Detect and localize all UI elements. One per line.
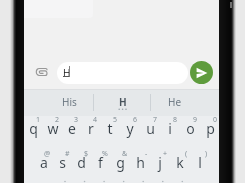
staticText: a <box>40 153 48 172</box>
staticText: 2 <box>55 115 60 125</box>
button[interactable]: s <box>53 147 72 177</box>
staticText: + <box>163 149 168 159</box>
staticText: ( <box>185 149 188 159</box>
staticText: s <box>59 153 66 172</box>
staticText: p <box>206 119 215 138</box>
staticText: @ <box>44 149 51 159</box>
button[interactable]: h <box>130 147 150 177</box>
staticText: y <box>126 119 134 138</box>
button[interactable]: l <box>190 147 210 177</box>
staticText: u <box>146 119 155 138</box>
staticText: l <box>198 153 202 172</box>
staticText: 1 <box>36 115 41 125</box>
staticText: e <box>68 119 76 138</box>
staticText: d <box>77 153 86 172</box>
button[interactable]: o <box>180 114 200 143</box>
staticText: 7 <box>153 115 158 125</box>
button[interactable]: r <box>81 114 100 143</box>
button[interactable]: g <box>110 147 130 177</box>
staticText: - <box>145 149 148 159</box>
button[interactable]: a <box>34 147 53 177</box>
button[interactable]: p <box>200 114 220 143</box>
button[interactable]: k <box>170 147 190 177</box>
staticText: k <box>176 153 184 172</box>
button[interactable]: w <box>43 114 62 143</box>
staticText: t <box>107 119 113 138</box>
staticText: $ <box>84 149 89 159</box>
staticText: & <box>122 149 128 159</box>
staticText: ) <box>205 149 208 159</box>
staticText: He <box>168 95 182 109</box>
staticText: 5 <box>113 115 118 125</box>
button[interactable]: f <box>91 147 110 177</box>
staticText: i <box>168 119 172 138</box>
button[interactable] <box>190 61 213 84</box>
button[interactable] <box>57 62 188 84</box>
staticText: # <box>65 149 70 159</box>
button[interactable]: t <box>100 114 120 143</box>
staticText: f <box>98 153 103 172</box>
button[interactable]: i <box>160 114 180 143</box>
button[interactable]: d <box>72 147 91 177</box>
staticText: h <box>136 153 145 172</box>
staticText: 6 <box>133 115 138 125</box>
button[interactable]: u <box>140 114 160 143</box>
staticText: q <box>29 119 38 138</box>
button[interactable] <box>35 67 48 77</box>
staticText: 3 <box>74 115 79 125</box>
button[interactable]: j <box>150 147 170 177</box>
staticText: 4 <box>93 115 98 125</box>
staticText: o <box>186 119 195 138</box>
staticText: r <box>88 119 94 138</box>
staticText: His <box>62 95 77 109</box>
staticText: % <box>102 149 108 159</box>
staticText: H <box>63 66 71 80</box>
staticText: w <box>47 119 59 138</box>
staticText: 9 <box>193 115 198 125</box>
button[interactable]: q <box>24 114 43 143</box>
staticText: j <box>158 153 162 172</box>
staticText: g <box>116 153 125 172</box>
button[interactable]: e <box>62 114 81 143</box>
button[interactable]: y <box>120 114 140 143</box>
staticText: 8 <box>173 115 178 125</box>
staticText: 0 <box>213 115 218 125</box>
staticText: H <box>119 95 127 109</box>
